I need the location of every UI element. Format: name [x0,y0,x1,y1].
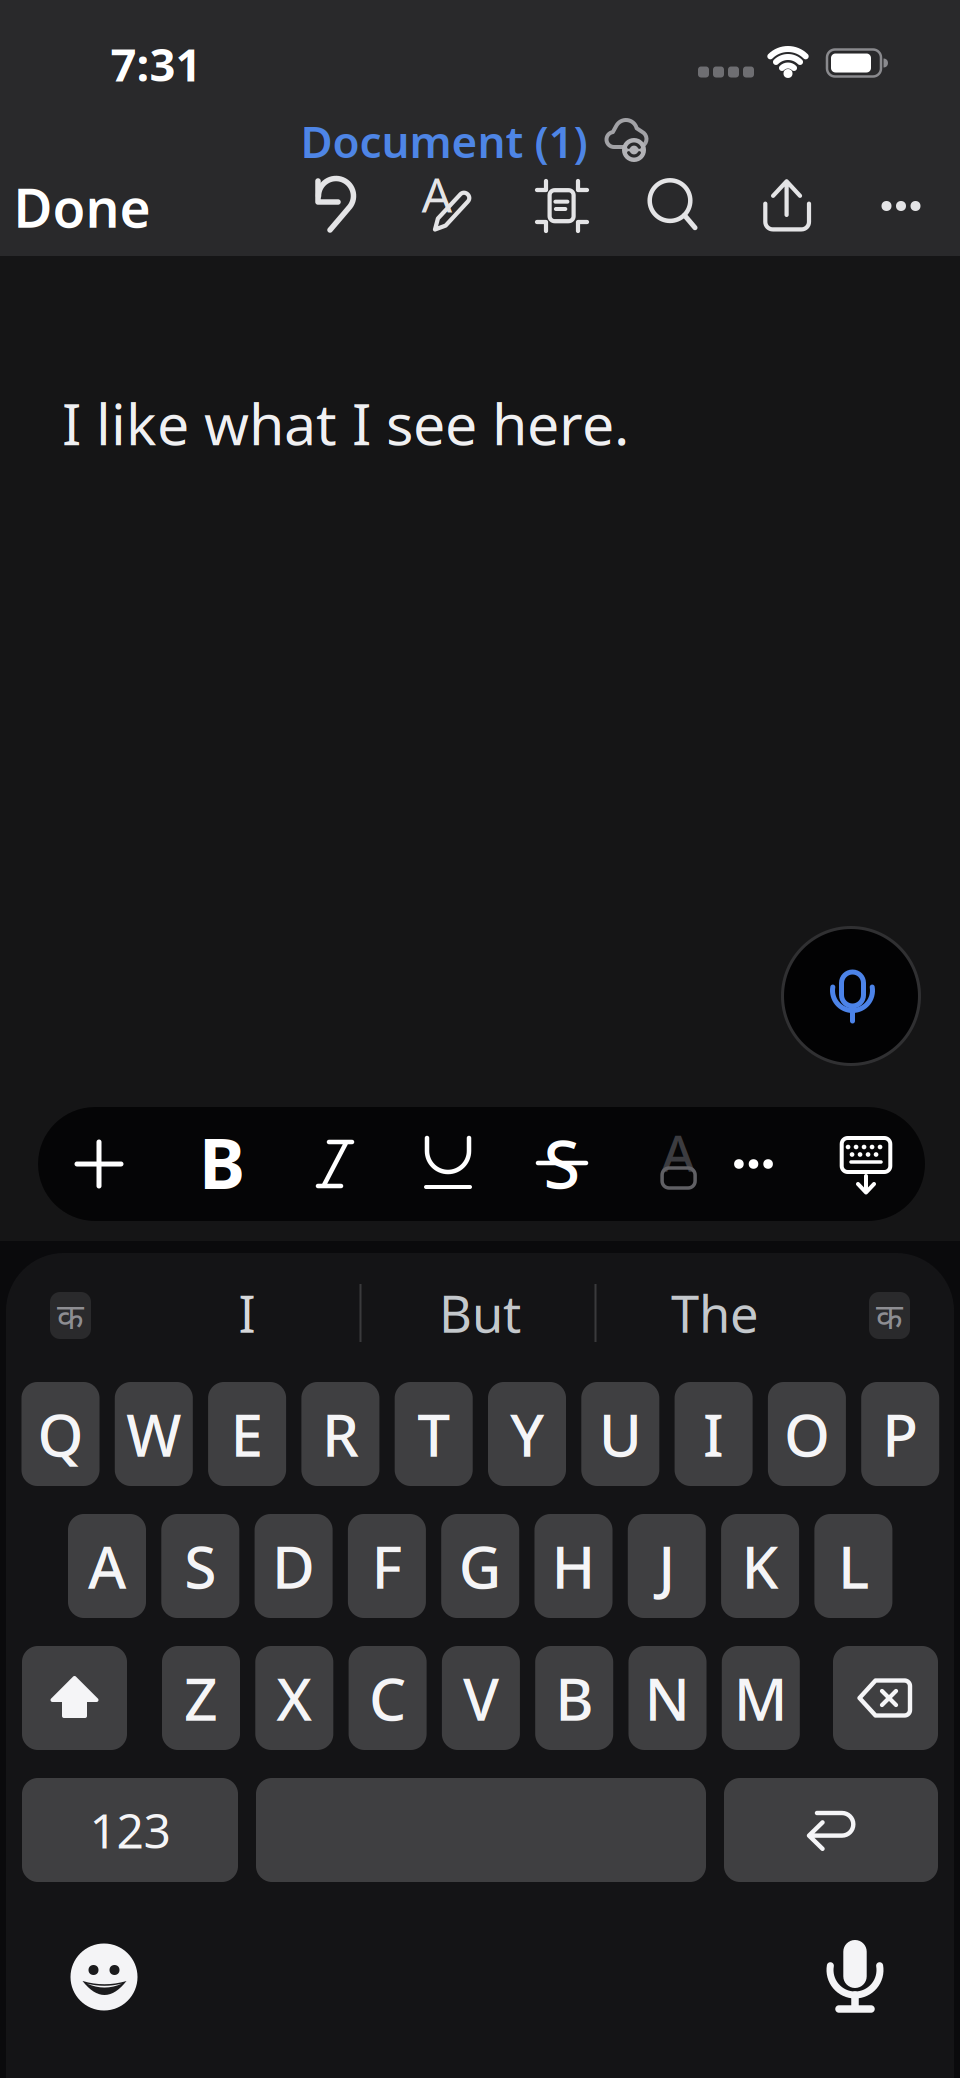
button[interactable]: M [722,1646,800,1750]
button[interactable]: Format text [422,178,472,234]
staticText: Z [184,1659,218,1737]
button[interactable]: 123 [22,1778,238,1882]
button[interactable]: Strikethrough [534,1134,590,1192]
button[interactable]: V [442,1646,520,1750]
staticText: Q [37,1395,83,1473]
button[interactable]: A [68,1514,146,1618]
button[interactable]: Shift [22,1646,127,1750]
button[interactable]: Emoji [70,1943,138,2011]
staticText: T [417,1395,450,1473]
button[interactable]: R [301,1382,379,1486]
button[interactable]: N [628,1646,706,1750]
button[interactable]: Mobile view [536,180,588,232]
button[interactable]: W [115,1382,193,1486]
staticText: S [184,1527,216,1605]
staticText: S [543,1119,580,1207]
button[interactable]: More formatting [734,1159,773,1169]
button[interactable]: G [441,1514,519,1618]
button[interactable]: I [675,1382,753,1486]
staticText: G [459,1527,502,1605]
button[interactable]: Italic [315,1136,355,1192]
staticText: H [551,1527,595,1605]
button[interactable]: X [255,1646,333,1750]
button[interactable]: E [208,1382,286,1486]
staticText: W [126,1395,181,1473]
staticText: I [703,1395,724,1473]
staticText: N [644,1659,690,1737]
staticText: K [742,1527,779,1605]
staticText: Y [510,1395,544,1473]
staticText: B [555,1659,593,1737]
button[interactable]: T [395,1382,473,1486]
staticText: F [371,1527,402,1605]
button[interactable]: Z [162,1646,240,1750]
staticText: V [463,1659,499,1737]
staticText: L [838,1527,869,1605]
button[interactable]: I [157,1283,337,1343]
button[interactable]: Switch keyboard language [869,1292,910,1339]
button[interactable]: Undo [313,178,357,234]
button[interactable]: Sync status [600,114,660,164]
staticText: But [439,1279,521,1347]
button[interactable]: Font color [652,1125,706,1201]
staticText: J [658,1527,675,1605]
staticText: P [882,1395,918,1473]
button[interactable]: Done [13,172,150,242]
button[interactable]: Delete [833,1646,938,1750]
button[interactable]: Underline [420,1136,476,1192]
staticText: D [272,1527,315,1605]
staticText: U [599,1395,642,1473]
staticText: E [231,1395,264,1473]
button[interactable]: Y [488,1382,566,1486]
button[interactable]: The [625,1283,805,1343]
button[interactable]: Search [646,176,702,232]
staticText: 7:31 [110,34,201,94]
button[interactable]: C [349,1646,427,1750]
button[interactable]: J [628,1514,706,1618]
button[interactable]: O [768,1382,846,1486]
staticText: The [671,1279,759,1347]
button[interactable]: Share [761,176,815,234]
button[interactable]: But [390,1283,570,1343]
staticText: B [199,1116,245,1208]
button[interactable]: L [814,1514,892,1618]
staticText: A [661,1118,694,1186]
button[interactable]: Bold [199,1116,245,1208]
staticText: C [369,1659,406,1737]
button[interactable]: Q [21,1382,99,1486]
staticText: क [57,1292,84,1338]
staticText: Done [13,172,150,242]
staticText: O [784,1395,830,1473]
button[interactable]: K [721,1514,799,1618]
staticText: 123 [89,1798,170,1862]
staticText: A [421,162,452,226]
button[interactable]: Dictation [781,926,921,1066]
staticText: Document (1) [300,112,587,170]
button[interactable]: P [861,1382,939,1486]
button[interactable]: U [581,1382,659,1486]
button[interactable]: More [881,201,920,211]
button[interactable]: D [255,1514,333,1618]
staticText: R [322,1395,359,1473]
staticText: क [876,1292,903,1338]
button[interactable]: Return [724,1778,938,1882]
button[interactable]: Dismiss keyboard [838,1130,894,1202]
button[interactable]: B [535,1646,613,1750]
staticText: I [238,1279,255,1347]
button[interactable]: Switch keyboard language [50,1292,91,1339]
staticText: A [88,1527,126,1605]
button[interactable]: Insert [75,1140,123,1188]
button[interactable]: Document (1) [300,112,587,170]
button[interactable]: H [534,1514,612,1618]
staticText: X [276,1659,312,1737]
staticText: M [734,1659,788,1737]
button[interactable]: S [161,1514,239,1618]
staticText: I like what I see here. [62,385,629,461]
button[interactable]: Dictation [825,1928,885,2014]
button[interactable]: F [348,1514,426,1618]
